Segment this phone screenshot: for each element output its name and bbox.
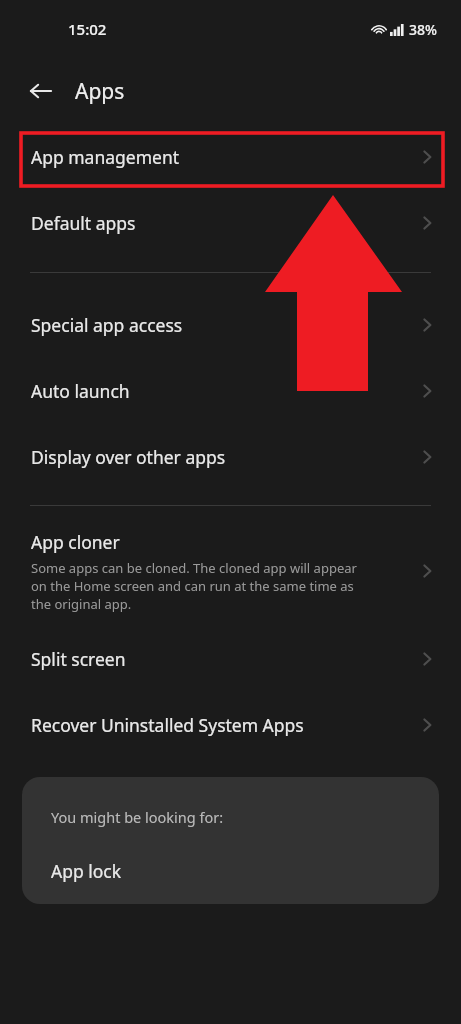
staticText: You might be looking for: xyxy=(51,807,224,827)
button[interactable]: App cloner xyxy=(0,516,461,626)
button[interactable]: App management xyxy=(0,124,461,190)
staticText: App lock xyxy=(51,859,122,883)
button[interactable]: Split screen xyxy=(0,626,461,692)
button[interactable]: Display over other apps xyxy=(0,424,461,490)
button[interactable]: Back xyxy=(18,68,64,114)
staticText: App management xyxy=(31,145,180,169)
staticText: Special app access xyxy=(31,313,183,337)
staticText: Default apps xyxy=(31,211,136,235)
staticText: Auto launch xyxy=(31,379,130,403)
button[interactable]: Recover Uninstalled System Apps xyxy=(0,692,461,758)
staticText: Recover Uninstalled System Apps xyxy=(31,713,304,737)
staticText: Split screen xyxy=(31,647,126,671)
staticText: 15:02 xyxy=(68,19,107,39)
button[interactable]: App lock xyxy=(22,851,439,891)
button[interactable]: Auto launch xyxy=(0,358,461,424)
button[interactable]: Special app access xyxy=(0,292,461,358)
staticText: Apps xyxy=(75,77,125,106)
staticText: Some apps can be cloned. The cloned app … xyxy=(31,559,357,613)
staticText: App cloner xyxy=(31,530,120,554)
staticText: Display over other apps xyxy=(31,445,226,469)
staticText: 38% xyxy=(409,20,437,39)
button[interactable]: Default apps xyxy=(0,190,461,256)
